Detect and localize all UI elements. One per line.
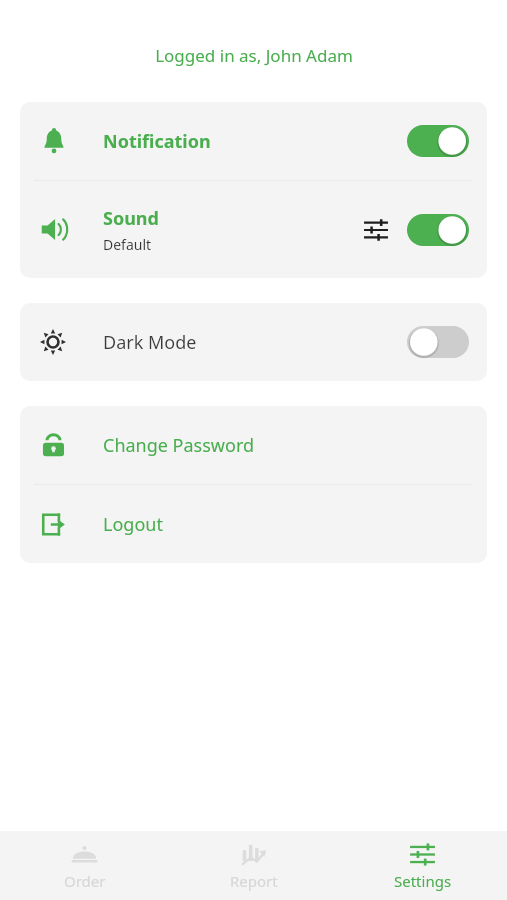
button[interactable]: Change Password xyxy=(20,406,487,484)
staticText: Order xyxy=(64,871,106,891)
staticText: Dark Mode xyxy=(103,330,197,355)
staticText: Logout xyxy=(103,512,163,537)
staticText: Change Password xyxy=(103,433,255,458)
staticText: Report xyxy=(230,871,278,891)
staticText: Settings xyxy=(394,871,452,891)
button[interactable]: Report xyxy=(169,833,338,899)
button[interactable]: Notification xyxy=(20,102,487,180)
button[interactable]: Toggle on xyxy=(407,125,469,157)
staticText: Notification xyxy=(103,129,211,154)
staticText: Sound xyxy=(103,206,159,231)
button[interactable]: Sound options xyxy=(359,213,393,247)
button[interactable]: Logout xyxy=(20,485,487,563)
staticText: Logged in as, John Adam xyxy=(155,44,353,67)
button[interactable]: Settings xyxy=(338,833,507,899)
button[interactable]: Sound xyxy=(20,181,487,278)
button[interactable]: Order xyxy=(0,833,169,899)
staticText: Default xyxy=(103,235,152,254)
button[interactable]: Toggle on xyxy=(407,214,469,246)
button[interactable]: Dark Mode xyxy=(20,303,487,381)
button[interactable]: Toggle off xyxy=(407,326,469,358)
